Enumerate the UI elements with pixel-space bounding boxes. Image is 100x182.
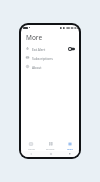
button[interactable]: About [21, 62, 79, 71]
button[interactable]: Eat Alert [21, 44, 79, 53]
button[interactable]: Subscriptions [21, 53, 79, 62]
staticText: Subscriptions [32, 56, 53, 60]
button[interactable]: Recent apps [69, 153, 71, 155]
staticText: More [26, 33, 43, 42]
button[interactable]: Toggle Eat Alert [68, 47, 75, 51]
button[interactable]: Back [30, 153, 32, 155]
staticText: Home [28, 147, 35, 150]
button[interactable]: Browse [41, 140, 60, 151]
staticText: More [67, 147, 73, 150]
staticText: Eat Alert [32, 47, 46, 51]
staticText: About [32, 65, 42, 69]
button[interactable]: Home [21, 140, 41, 151]
staticText: Browse [46, 147, 55, 150]
button[interactable]: More [60, 140, 79, 151]
